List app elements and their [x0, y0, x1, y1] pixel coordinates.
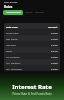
staticText: Discount	[6, 43, 16, 46]
staticText: Prime Rate & Fed Funds Rate	[12, 92, 52, 96]
staticText: 5.38%	[51, 55, 58, 58]
staticText: 5.50%	[51, 43, 58, 46]
staticText: 1M Treasury	[6, 55, 20, 58]
staticText: 10Y Treasury	[6, 61, 21, 64]
staticText: History	[25, 11, 33, 14]
staticText: SOFR	[6, 49, 12, 52]
button[interactable]: Prime Rate	[6, 29, 58, 35]
staticText: Interest Rate	[12, 83, 52, 91]
button[interactable]: Fed Funds	[6, 35, 58, 41]
staticText: Fed Funds	[6, 37, 18, 40]
staticText: Current Rates	[6, 11, 21, 14]
button[interactable]: Forecast	[34, 10, 46, 15]
staticText: 5.33%	[51, 37, 58, 40]
staticText: 4.28%	[51, 61, 58, 64]
button[interactable]: Current Rates	[3, 10, 23, 15]
staticText: Rate Type	[6, 25, 18, 28]
staticText: 8.50%	[51, 31, 58, 34]
staticText: Forecast	[35, 11, 45, 14]
staticText: Current	[48, 25, 58, 28]
staticText: Rates	[4, 5, 13, 9]
staticText: 6.98%	[51, 67, 58, 70]
staticText: 30Y Mortgage	[6, 67, 22, 70]
button[interactable]: SOFR	[6, 47, 58, 53]
button[interactable]: 10Y Treasury	[6, 59, 58, 65]
staticText: Rate Tracker	[4, 1, 18, 4]
button[interactable]: Discount	[6, 41, 58, 47]
button[interactable]: Rate Type	[6, 23, 58, 29]
staticText: 5.31%	[51, 49, 58, 52]
staticText: Prime Rate	[6, 31, 19, 34]
button[interactable]: 30Y Mortgage	[6, 65, 58, 71]
button[interactable]: History	[23, 10, 34, 15]
button[interactable]: 1M Treasury	[6, 53, 58, 59]
